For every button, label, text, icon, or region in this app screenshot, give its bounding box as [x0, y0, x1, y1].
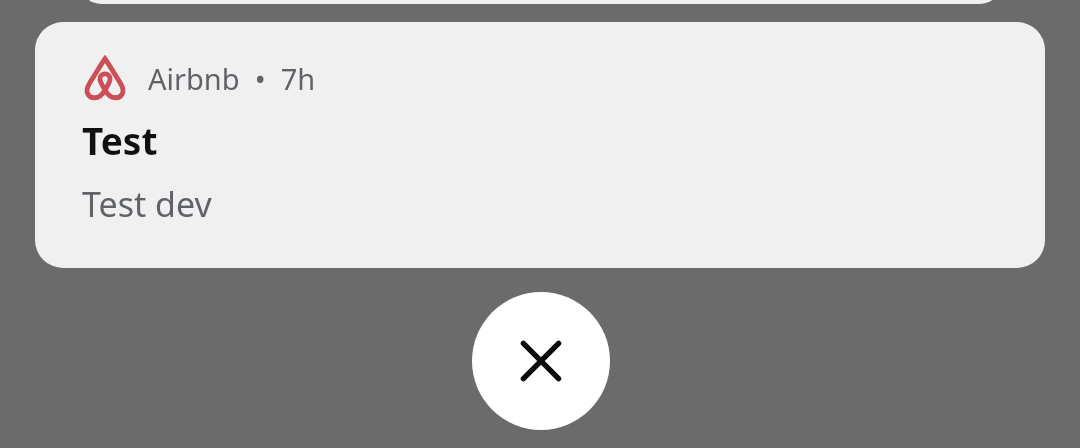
staticText: Test dev: [82, 181, 212, 227]
staticText: Airbnb • 7h: [148, 59, 316, 98]
button[interactable]: Airbnb • 7h: [35, 22, 1045, 268]
staticText: Test: [82, 115, 158, 165]
button[interactable]: Dismiss all notifications: [472, 292, 610, 430]
button[interactable]: [78, 0, 1003, 4]
